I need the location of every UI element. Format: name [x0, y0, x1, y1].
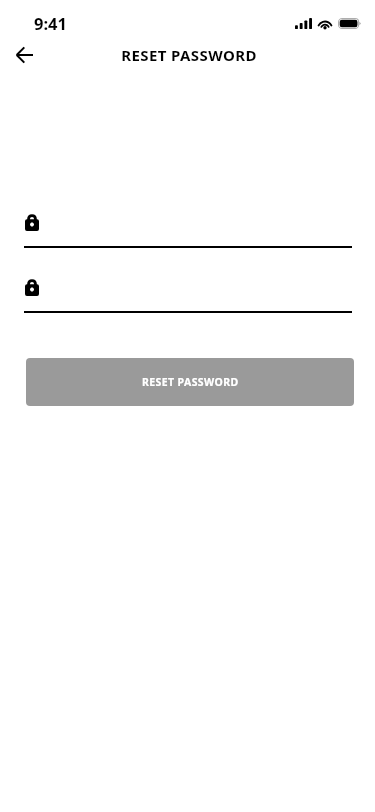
- staticText: RESET PASSWORD: [121, 45, 257, 65]
- staticText: 9:41: [34, 12, 67, 34]
- button[interactable]: Confirm new password: [24, 280, 352, 313]
- button[interactable]: Back: [5, 37, 45, 73]
- staticText: RESET PASSWORD: [142, 375, 239, 389]
- button[interactable]: New password: [24, 215, 352, 248]
- button[interactable]: RESET PASSWORD: [26, 358, 354, 406]
